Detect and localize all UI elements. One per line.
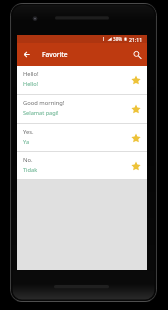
staticText: Selamat pagi!	[23, 109, 59, 117]
staticText: No.	[23, 156, 33, 164]
staticText: Favorite	[42, 50, 68, 59]
staticText: Good morning!	[23, 99, 65, 107]
staticText: 21:11	[129, 36, 143, 43]
staticText: Yes.	[23, 128, 34, 136]
staticText: 38%	[113, 36, 123, 42]
button[interactable]: Hello!	[17, 66, 147, 95]
staticText: Hello!	[23, 70, 39, 78]
button[interactable]: Search	[127, 43, 146, 66]
button[interactable]: Good morning!	[17, 95, 147, 124]
staticText: Hello!	[23, 80, 39, 88]
button[interactable]: Back	[17, 43, 36, 66]
staticText: Tidak	[23, 166, 38, 174]
button[interactable]: Yes.	[17, 124, 147, 152]
button[interactable]: No.	[17, 152, 147, 180]
staticText: Ya	[23, 138, 30, 146]
